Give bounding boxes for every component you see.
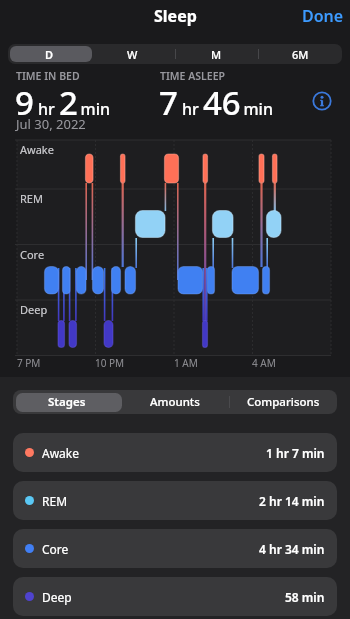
button[interactable] bbox=[312, 91, 332, 111]
staticText: Stages bbox=[48, 394, 86, 410]
staticText: Deep bbox=[42, 589, 72, 605]
staticText: 58 min bbox=[285, 589, 325, 605]
staticText: REM bbox=[20, 191, 43, 206]
staticText: TIME IN BED bbox=[16, 69, 80, 83]
button[interactable]: Comparisons bbox=[229, 390, 337, 414]
button[interactable]: D bbox=[8, 44, 91, 64]
button[interactable]: Done bbox=[298, 1, 348, 31]
staticText: Done bbox=[302, 5, 344, 27]
staticText: 10 PM bbox=[95, 356, 125, 370]
staticText: 4 hr 34 min bbox=[259, 541, 325, 557]
staticText: 6M bbox=[292, 47, 309, 62]
staticText: W bbox=[127, 47, 138, 62]
staticText: 7 hr 46 min bbox=[159, 80, 273, 125]
button[interactable]: Core bbox=[13, 529, 337, 568]
staticText: Awake bbox=[42, 445, 80, 461]
staticText: D bbox=[45, 47, 54, 62]
staticText: 1 hr 7 min bbox=[266, 445, 325, 461]
staticText: 4 AM bbox=[252, 356, 276, 370]
staticText: M bbox=[211, 47, 222, 62]
staticText: REM bbox=[42, 493, 68, 509]
staticText: Core bbox=[20, 247, 45, 262]
button[interactable]: Stages bbox=[13, 390, 121, 414]
staticText: 1 AM bbox=[174, 356, 198, 370]
staticText: 7 PM bbox=[17, 356, 41, 370]
button[interactable]: Awake bbox=[13, 433, 337, 472]
staticText: Awake bbox=[20, 142, 54, 157]
button[interactable]: Amounts bbox=[121, 390, 229, 414]
button[interactable]: M bbox=[174, 44, 258, 64]
button[interactable]: Deep bbox=[13, 577, 337, 616]
button[interactable]: W bbox=[91, 44, 174, 64]
staticText: Sleep bbox=[154, 5, 197, 27]
staticText: Deep bbox=[20, 302, 48, 317]
staticText: 9 hr 2 min bbox=[15, 80, 111, 125]
staticText: Amounts bbox=[150, 394, 200, 410]
staticText: 2 hr 14 min bbox=[259, 493, 325, 509]
staticText: Jul 30, 2022 bbox=[16, 115, 86, 133]
staticText: Comparisons bbox=[247, 394, 320, 410]
button[interactable]: REM bbox=[13, 481, 337, 520]
staticText: Core bbox=[42, 541, 69, 557]
button[interactable]: 6M bbox=[258, 44, 342, 64]
staticText: TIME ASLEEP bbox=[160, 69, 225, 83]
